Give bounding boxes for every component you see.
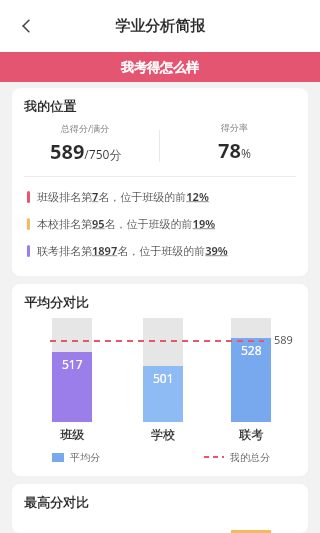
staticText: 平均分对比 <box>24 294 89 310</box>
staticText: 学业分析简报 <box>115 17 205 36</box>
staticText: 学校 <box>151 427 175 442</box>
button[interactable]: Back <box>6 6 46 46</box>
staticText: 501 <box>153 370 174 386</box>
button[interactable]: 班级排名第7名，位于班级的前12% <box>12 183 308 210</box>
staticText: 本校排名第95名，位于班级的前19% <box>37 216 216 231</box>
staticText: 得分率 <box>221 122 248 133</box>
staticText: 班级 <box>60 427 84 442</box>
staticText: 我的总分 <box>230 451 270 464</box>
staticText: 589 <box>274 332 293 347</box>
staticText: 我考得怎么样 <box>121 59 199 75</box>
staticText: 528 <box>241 342 262 358</box>
button[interactable]: 我考得怎么样 <box>0 52 320 82</box>
staticText: 总得分/满分 <box>61 122 110 134</box>
staticText: 最高分对比 <box>24 494 89 510</box>
staticText: 平均分 <box>70 451 100 464</box>
staticText: 班级排名第7名，位于班级的前12% <box>37 189 209 204</box>
staticText: 517 <box>62 356 83 372</box>
button[interactable]: 联考排名第1897名，位于班级的前39% <box>12 237 308 264</box>
staticText: 589/750分 <box>50 138 122 165</box>
staticText: 联考排名第1897名，位于班级的前39% <box>37 243 228 258</box>
staticText: 我的位置 <box>24 98 76 114</box>
staticText: 78% <box>218 137 251 164</box>
staticText: 联考 <box>239 427 263 442</box>
button[interactable]: 本校排名第95名，位于班级的前19% <box>12 210 308 237</box>
